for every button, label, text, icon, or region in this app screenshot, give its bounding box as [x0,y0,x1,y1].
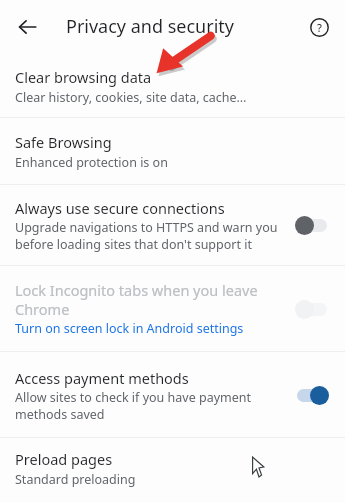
button[interactable]: Toggle [291,380,339,410]
staticText: Clear browsing data [15,67,152,87]
staticText: Access payment methods [15,368,189,388]
staticText: Always use secure connections [15,198,225,218]
staticText: Enhanced protection is on [15,154,168,171]
staticText: Turn on screen lock in Android settings [15,320,244,337]
button[interactable]: Help [301,9,337,45]
staticText: Standard preloading [15,471,136,488]
staticText: ? [317,20,322,35]
staticText: Preload pages [15,449,113,469]
staticText: Privacy and security [66,14,234,39]
button[interactable]: Toggle [291,294,339,324]
button[interactable]: Back [10,9,46,45]
button[interactable]: Toggle [291,210,339,240]
button[interactable]: Access payment methods [0,352,345,437]
button[interactable]: Safe Browsing [0,118,345,184]
button[interactable]: Preload pages [0,438,345,498]
button[interactable]: Lock Incognito tabs when you leave Chrom… [0,266,345,351]
staticText: Upgrade navigations to HTTPS and warn yo… [15,219,278,252]
staticText: Allow sites to check if you have payment… [15,389,251,422]
staticText: Clear history, cookies, site data, cache… [15,89,247,106]
button[interactable]: Always use secure connections [0,185,345,265]
button[interactable]: Clear browsing data [0,55,345,117]
staticText: Safe Browsing [15,132,112,152]
staticText: Lock Incognito tabs when you leave Chrom… [15,280,258,319]
